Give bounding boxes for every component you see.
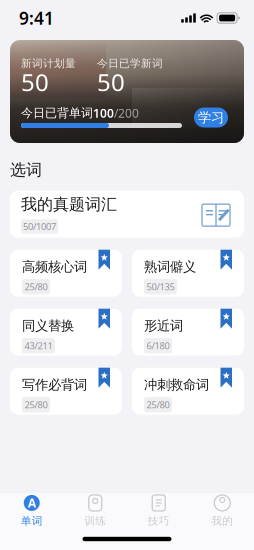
button[interactable]: 熟词僻义 (132, 250, 244, 297)
staticText: 形近词 (144, 318, 183, 334)
staticText: 50/1007 (23, 220, 56, 233)
button[interactable]: 写作必背词 (10, 368, 122, 415)
staticText: 100 (93, 105, 114, 121)
staticText: 熟词僻义 (144, 259, 196, 275)
staticText: 43/211 (24, 339, 52, 352)
staticText: /200 (114, 105, 139, 121)
staticText: 冲刺救命词 (144, 377, 209, 393)
staticText: 同义替换 (22, 318, 74, 334)
button[interactable]: 冲刺救命词 (132, 368, 244, 415)
staticText: 25/80 (24, 398, 47, 411)
staticText: 技巧 (148, 514, 170, 527)
button[interactable]: 我的真题词汇 (10, 191, 244, 238)
staticText: 25/80 (24, 280, 47, 293)
staticText: A (28, 495, 36, 511)
staticText: 6/180 (146, 339, 169, 352)
button[interactable]: 我的 (190, 493, 254, 528)
button[interactable]: 训练 (63, 493, 127, 528)
staticText: 我的真题词汇 (21, 195, 117, 214)
button[interactable]: 同义替换 (10, 309, 122, 356)
staticText: 新词计划量 (21, 57, 76, 70)
staticText: 今日已背单词 (21, 106, 93, 120)
staticText: 25/80 (146, 398, 169, 411)
staticText: 50 (97, 66, 125, 98)
staticText: 今日已学新词 (97, 57, 163, 70)
staticText: 写作必背词 (22, 377, 87, 393)
staticText: 我的 (211, 514, 233, 527)
staticText: 单词 (21, 514, 43, 527)
button[interactable]: 技巧 (127, 493, 190, 528)
button[interactable]: 高频核心词 (10, 250, 122, 297)
button[interactable]: A (0, 493, 63, 528)
staticText: 50/135 (146, 280, 174, 293)
button[interactable]: 学习 (194, 107, 228, 127)
staticText: 9:41 (19, 6, 54, 29)
staticText: 50 (21, 66, 49, 98)
staticText: 高频核心词 (22, 259, 87, 275)
staticText: 训练 (84, 514, 106, 527)
staticText: 选词 (10, 160, 42, 180)
button[interactable]: 形近词 (132, 309, 244, 356)
staticText: 学习 (198, 109, 224, 126)
